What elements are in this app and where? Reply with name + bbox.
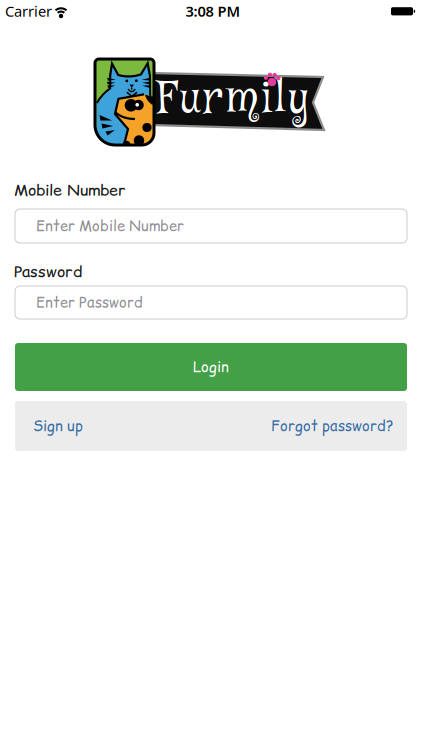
staticText: Forgot password?	[271, 416, 394, 436]
staticText: Mobile Number	[14, 179, 126, 201]
button[interactable]: Enter Password	[15, 286, 407, 319]
button[interactable]: Login	[15, 343, 407, 391]
staticText: Password	[14, 260, 82, 283]
staticText: 3:08 PM	[185, 1, 240, 21]
staticText: Carrier	[5, 1, 52, 21]
button[interactable]: Forgot password?	[271, 416, 394, 436]
staticText: Enter Mobile Number	[36, 216, 184, 236]
staticText: Sign up	[33, 416, 83, 436]
staticText: Furmily	[157, 69, 308, 130]
staticText: Enter Password	[36, 292, 143, 313]
button[interactable]: Enter Mobile Number	[15, 209, 407, 243]
button[interactable]: Sign up	[33, 416, 83, 436]
staticText: Login	[193, 357, 229, 377]
